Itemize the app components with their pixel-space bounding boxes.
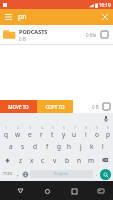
button[interactable]: , xyxy=(14,167,21,181)
staticText: b xyxy=(65,156,69,165)
button[interactable]: Backspace xyxy=(97,153,113,167)
button[interactable]: 4 xyxy=(36,125,47,139)
button[interactable]: 0 xyxy=(102,125,113,139)
staticText: 1 xyxy=(5,125,7,130)
button[interactable]: x xyxy=(26,153,37,167)
button[interactable]: Change language xyxy=(21,167,30,181)
staticText: d xyxy=(33,142,37,151)
button[interactable]: COPY TO xyxy=(37,100,73,113)
staticText: MOVE TO xyxy=(8,104,29,110)
staticText: v xyxy=(53,156,57,165)
button[interactable]: v xyxy=(49,153,61,167)
button[interactable]: Clear search xyxy=(99,11,111,23)
staticText: pn xyxy=(18,12,27,22)
staticText: 0 B xyxy=(92,104,99,110)
staticText: 0 B xyxy=(19,36,26,42)
button[interactable]: Home xyxy=(40,184,54,198)
staticText: ?123 xyxy=(3,171,13,177)
button[interactable]: h xyxy=(64,139,75,153)
button[interactable]: Voice input xyxy=(101,114,111,124)
button[interactable]: j xyxy=(75,139,86,153)
staticText: 5 xyxy=(52,125,54,130)
staticText: COPY TO xyxy=(45,104,65,110)
staticText: , xyxy=(17,170,19,178)
button[interactable]: Menu xyxy=(2,11,14,23)
staticText: 8 xyxy=(85,125,87,130)
button[interactable]: s xyxy=(17,139,29,153)
button[interactable]: Select all xyxy=(101,101,112,112)
staticText: s xyxy=(21,142,25,151)
staticText: English xyxy=(54,171,69,177)
button[interactable]: d xyxy=(29,139,41,153)
staticText: q xyxy=(4,130,8,139)
button[interactable]: n xyxy=(73,153,85,167)
staticText: i xyxy=(85,130,87,139)
button[interactable]: 2 xyxy=(12,125,24,139)
staticText: 9 xyxy=(96,125,98,130)
button[interactable]: 7 xyxy=(69,125,80,139)
button[interactable]: a xyxy=(5,139,17,153)
staticText: m xyxy=(88,156,95,165)
staticText: 0 file xyxy=(86,32,97,38)
staticText: f xyxy=(46,142,49,151)
staticText: h xyxy=(67,142,72,151)
staticText: g xyxy=(57,142,61,151)
staticText: a xyxy=(9,142,13,151)
staticText: l xyxy=(102,142,104,151)
staticText: n xyxy=(77,156,82,165)
button[interactable]: z xyxy=(15,153,26,167)
button[interactable]: 3 xyxy=(24,125,36,139)
button[interactable]: English xyxy=(30,170,93,178)
staticText: x xyxy=(30,156,34,165)
button[interactable]: . xyxy=(93,167,100,181)
button[interactable]: Recent apps xyxy=(67,184,81,198)
staticText: k xyxy=(90,142,94,151)
button[interactable]: Shift xyxy=(0,153,15,167)
staticText: . xyxy=(96,170,98,178)
staticText: 2 xyxy=(17,125,19,130)
staticText: 7 xyxy=(74,125,76,130)
button[interactable]: c xyxy=(37,153,49,167)
button[interactable]: g xyxy=(53,139,64,153)
button[interactable]: PODCASTS xyxy=(0,25,113,44)
button[interactable]: f xyxy=(41,139,53,153)
staticText: z xyxy=(19,156,23,165)
staticText: c xyxy=(41,156,45,165)
staticText: PODCASTS xyxy=(19,28,48,35)
button[interactable]: l xyxy=(97,139,108,153)
button[interactable]: Select PODCASTS xyxy=(99,29,110,40)
button[interactable]: Switch keyboard xyxy=(94,184,108,198)
staticText: 6 xyxy=(63,125,65,130)
button[interactable]: 8 xyxy=(80,125,91,139)
staticText: 10:19 xyxy=(99,2,111,8)
button[interactable]: ?123 xyxy=(1,167,14,181)
button[interactable]: 9 xyxy=(91,125,102,139)
button[interactable]: Back xyxy=(13,184,27,198)
staticText: e xyxy=(28,130,32,139)
staticText: u xyxy=(72,130,77,139)
staticText: w xyxy=(15,130,21,139)
button[interactable]: k xyxy=(86,139,97,153)
staticText: t xyxy=(51,130,54,139)
button[interactable]: 6 xyxy=(58,125,69,139)
staticText: 4 xyxy=(41,125,43,130)
staticText: y xyxy=(62,130,66,139)
staticText: r xyxy=(40,130,43,139)
button[interactable]: m xyxy=(85,153,97,167)
button[interactable]: 5 xyxy=(47,125,58,139)
button[interactable]: 1 xyxy=(0,125,12,139)
staticText: 3 xyxy=(29,125,31,130)
staticText: 0 xyxy=(107,125,109,130)
staticText: j xyxy=(80,142,82,151)
button[interactable]: Search xyxy=(100,169,111,180)
button[interactable]: b xyxy=(61,153,73,167)
button[interactable]: MOVE TO xyxy=(0,100,37,113)
staticText: p xyxy=(106,130,110,139)
staticText: o xyxy=(95,130,99,139)
